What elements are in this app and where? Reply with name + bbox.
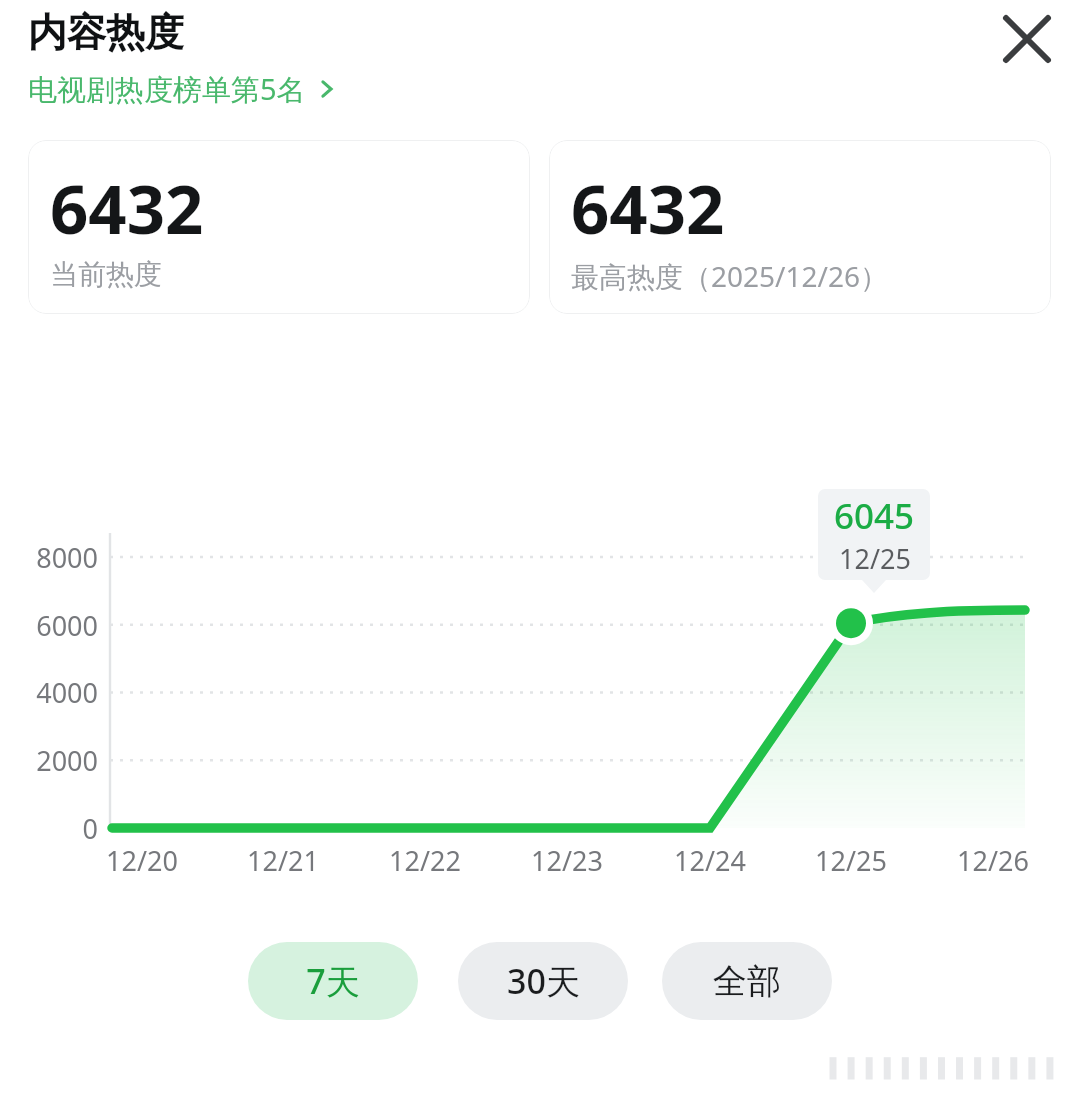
staticText: 12/20 xyxy=(106,842,178,879)
staticText: 当前热度 xyxy=(50,257,162,292)
staticText: 12/24 xyxy=(674,842,746,879)
staticText: 内容热度 xyxy=(28,8,184,57)
staticText: 12/22 xyxy=(389,842,461,879)
staticText: 7天 xyxy=(306,958,360,1004)
staticText: 4000 xyxy=(36,674,98,711)
staticText: 6432 xyxy=(571,162,725,253)
staticText: 12/21 xyxy=(247,842,319,879)
staticText: 12/23 xyxy=(531,842,603,879)
button[interactable]: 6432 xyxy=(28,140,530,314)
staticText: 8000 xyxy=(36,539,98,576)
staticText: 最高热度（2025/12/26） xyxy=(571,257,888,295)
staticText: 30天 xyxy=(507,958,580,1004)
button[interactable]: 电视剧热度榜单第5名 xyxy=(28,69,339,109)
staticText: 12/25 xyxy=(839,540,911,577)
staticText: 2000 xyxy=(36,742,98,779)
staticText: 全部 xyxy=(713,960,781,1003)
staticText: 0 xyxy=(82,810,98,847)
button[interactable]: 30天 xyxy=(458,942,628,1020)
staticText: 12/26 xyxy=(957,842,1029,879)
staticText: 12/25 xyxy=(815,842,887,879)
staticText: 6000 xyxy=(36,607,98,644)
button[interactable]: Close xyxy=(982,0,1072,84)
button[interactable]: 6432 xyxy=(549,140,1051,314)
staticText: 6432 xyxy=(50,162,204,253)
button[interactable]: 全部 xyxy=(662,942,832,1020)
staticText: 6045 xyxy=(834,492,915,540)
button[interactable]: 7天 xyxy=(248,942,418,1020)
staticText: 电视剧热度榜单第5名 xyxy=(28,69,306,109)
